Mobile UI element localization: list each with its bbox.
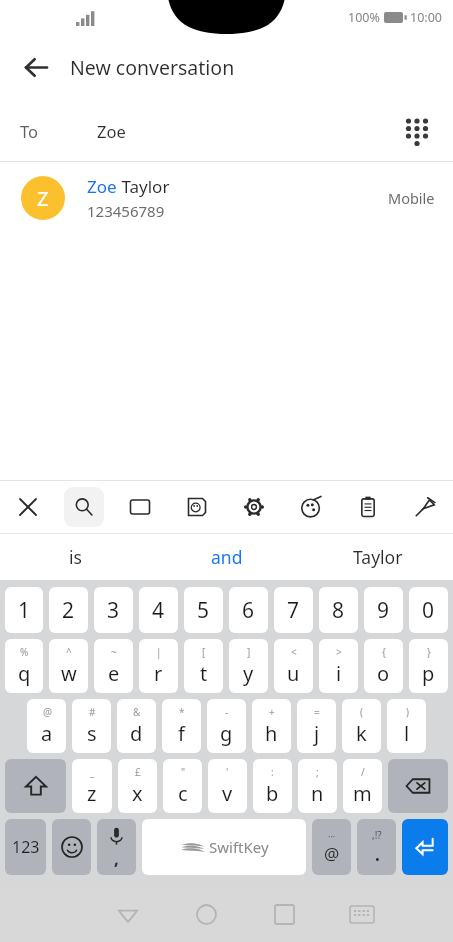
button[interactable]: £ [118, 759, 157, 813]
staticText: 7 [287, 596, 300, 625]
staticText: z [87, 780, 97, 807]
button[interactable]: 9 [364, 587, 403, 633]
button[interactable]: Sticker [168, 480, 225, 534]
button[interactable]: 7 [274, 587, 313, 633]
staticText: ··· [328, 830, 336, 842]
button[interactable]: Recents [245, 887, 323, 942]
staticText: p [422, 660, 435, 687]
staticText: 10:00 [410, 9, 442, 26]
button[interactable]: Keyboard [323, 887, 401, 942]
button[interactable]: Back [88, 887, 167, 942]
button[interactable]: # [72, 699, 111, 753]
button[interactable]: % [5, 639, 43, 693]
staticText: i [336, 660, 342, 687]
staticText: 1 [18, 596, 31, 625]
staticText: u [287, 660, 300, 687]
button[interactable]: 4 [139, 587, 178, 633]
staticText: 123456789 [87, 201, 165, 221]
staticText: ] [247, 645, 251, 659]
button[interactable]: 0 [409, 587, 448, 633]
button[interactable]: Emoji [52, 819, 91, 875]
button[interactable]: Z [0, 162, 453, 234]
button[interactable]: ) [387, 699, 426, 753]
button[interactable]: & [117, 699, 156, 753]
staticText: Taylor [353, 545, 403, 569]
staticText: [ [202, 645, 206, 659]
staticText: c [178, 780, 188, 807]
button[interactable]: GIF [112, 480, 168, 534]
staticText: 2 [62, 596, 75, 625]
button[interactable]: | [139, 639, 178, 693]
button[interactable]: Home [167, 887, 245, 942]
staticText: < [291, 645, 297, 659]
staticText: : [271, 765, 274, 779]
button[interactable]: 5 [184, 587, 223, 633]
staticText: ,!? [372, 828, 382, 842]
button[interactable]: > [319, 639, 358, 693]
button[interactable]: Period [357, 819, 396, 875]
button[interactable]: ' [208, 759, 247, 813]
button[interactable]: Themes [282, 480, 339, 534]
staticText: ; [316, 765, 319, 779]
button[interactable]: 8 [319, 587, 358, 633]
staticText: h [265, 720, 278, 747]
staticText: 3 [107, 596, 120, 625]
staticText: 8 [332, 596, 345, 625]
button[interactable]: 2 [49, 587, 88, 633]
button[interactable]: [ [184, 639, 223, 693]
button[interactable]: Space [142, 819, 306, 875]
button[interactable]: Back [14, 45, 58, 89]
button[interactable]: Enter [402, 819, 448, 875]
button[interactable]: Close [0, 480, 56, 534]
button[interactable]: { [364, 639, 403, 693]
button[interactable]: _ [72, 759, 112, 813]
button[interactable]: " [163, 759, 202, 813]
button[interactable]: : [253, 759, 292, 813]
staticText: ( [360, 705, 363, 719]
button[interactable]: < [274, 639, 313, 693]
staticText: To [20, 120, 39, 142]
button[interactable]: @ [27, 699, 66, 753]
button[interactable]: Search [56, 480, 112, 534]
staticText: 6 [242, 596, 255, 625]
button[interactable]: ~ [94, 639, 133, 693]
button[interactable]: Settings [225, 480, 282, 534]
button[interactable]: + [252, 699, 291, 753]
button[interactable]: } [409, 639, 448, 693]
button[interactable]: - [207, 699, 246, 753]
button[interactable]: Dialpad [395, 109, 439, 153]
button[interactable]: ^ [49, 639, 88, 693]
staticText: Mobile [388, 188, 435, 208]
staticText: New conversation [70, 54, 235, 81]
button[interactable]: 1 [5, 587, 43, 633]
staticText: is [69, 545, 82, 569]
button[interactable]: * [162, 699, 201, 753]
staticText: g [220, 720, 233, 747]
button[interactable]: Shift [5, 759, 66, 813]
button[interactable]: ] [229, 639, 268, 693]
button[interactable]: ( [342, 699, 381, 753]
staticText: SwiftKey [209, 837, 269, 857]
staticText: v [222, 780, 233, 807]
button[interactable]: At symbol [312, 819, 351, 875]
staticText: 0 [422, 596, 435, 625]
button[interactable]: Backspace [388, 759, 448, 813]
button[interactable]: / [343, 759, 382, 813]
button[interactable]: ; [298, 759, 337, 813]
button[interactable]: Voice input [97, 819, 136, 875]
button[interactable]: Taylor [302, 534, 453, 580]
button[interactable]: 6 [229, 587, 268, 633]
staticText: % [20, 645, 29, 659]
button[interactable]: is [0, 534, 151, 580]
button[interactable]: Pin [396, 480, 453, 534]
staticText: f [178, 720, 185, 747]
staticText: & [133, 705, 141, 719]
button[interactable]: = [297, 699, 336, 753]
button[interactable]: Clipboard [339, 480, 396, 534]
button[interactable]: 3 [94, 587, 133, 633]
staticText: Zoe [87, 175, 117, 198]
staticText: ~ [111, 645, 117, 659]
button[interactable]: 123 [5, 819, 46, 875]
staticText: 123 [12, 836, 40, 858]
button[interactable]: and [151, 534, 302, 580]
